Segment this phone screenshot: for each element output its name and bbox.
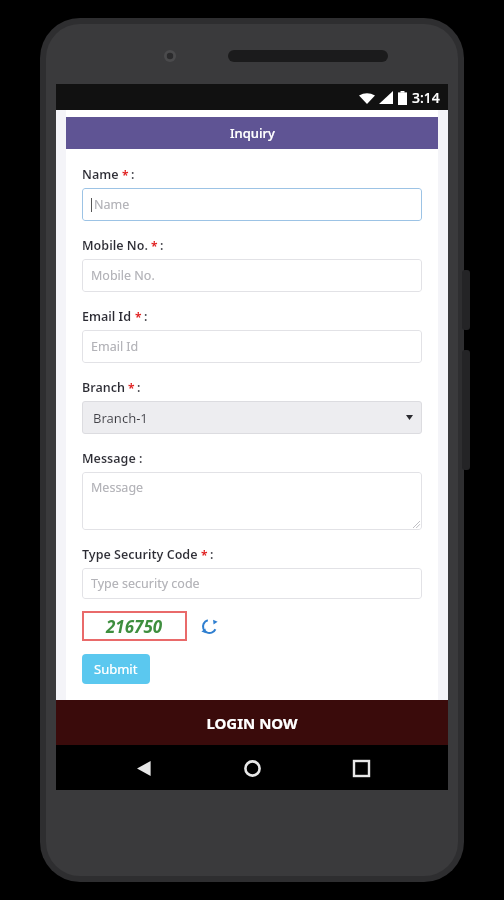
staticText: Message <box>82 450 136 467</box>
staticText: * <box>135 309 142 325</box>
staticText: : <box>139 450 143 467</box>
button[interactable]: Inquiry <box>66 117 438 149</box>
staticText: * <box>201 547 208 563</box>
button[interactable]: Name <box>82 188 422 221</box>
staticText: Email Id <box>91 338 139 355</box>
staticText: * <box>128 380 135 396</box>
staticText: Name <box>94 196 130 213</box>
staticText: Name <box>82 166 119 183</box>
staticText: : <box>131 166 135 183</box>
staticText: Branch <box>82 379 125 396</box>
button[interactable]: Type security code <box>82 568 422 599</box>
staticText: Email Id <box>82 308 132 325</box>
button[interactable]: Message <box>82 472 422 530</box>
staticText: : <box>144 308 148 325</box>
staticText: * <box>122 167 129 183</box>
staticText: Message <box>91 479 144 496</box>
staticText: : <box>137 379 141 396</box>
button[interactable]: Back <box>121 746 165 790</box>
button[interactable]: LOGIN NOW <box>56 700 448 745</box>
staticText: 3:14 <box>412 88 440 107</box>
button[interactable]: Home <box>230 746 274 790</box>
staticText: Mobile No. <box>82 237 148 254</box>
button[interactable]: Branch-1 <box>82 401 422 434</box>
button[interactable]: Refresh security code <box>198 615 220 637</box>
staticText: Branch-1 <box>93 409 148 427</box>
staticText: * <box>151 238 158 254</box>
staticText: Type security code <box>91 575 200 592</box>
staticText: Type Security Code <box>82 546 198 563</box>
staticText: Submit <box>94 660 138 678</box>
button[interactable]: Submit <box>82 654 150 684</box>
button[interactable]: Recent apps <box>339 746 383 790</box>
staticText: 216750 <box>106 615 163 638</box>
staticText: LOGIN NOW <box>206 713 298 733</box>
button[interactable]: Email Id <box>82 330 422 363</box>
button[interactable]: Mobile No. <box>82 259 422 292</box>
staticText: Inquiry <box>230 124 275 142</box>
staticText: Mobile No. <box>91 267 155 284</box>
staticText: : <box>160 237 164 254</box>
staticText: : <box>210 546 214 563</box>
